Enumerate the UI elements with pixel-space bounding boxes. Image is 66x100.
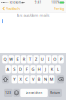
staticText: Postfach (6, 6, 20, 11)
staticText: W (9, 57, 13, 62)
staticText: O (53, 57, 56, 62)
staticText: D (19, 67, 22, 72)
button[interactable]: S (11, 65, 17, 73)
staticText: K (51, 67, 53, 72)
staticText: R (23, 57, 25, 62)
button[interactable]: Delete (57, 75, 64, 83)
button[interactable]: M (49, 75, 54, 83)
button[interactable]: H (36, 65, 42, 73)
staticText: Z (35, 57, 37, 62)
button[interactable]: X (18, 75, 23, 83)
staticText: G (31, 67, 34, 72)
staticText: Y (13, 77, 15, 82)
button[interactable]: A (5, 65, 11, 73)
staticText: M (50, 77, 54, 82)
button[interactable]: F (24, 65, 30, 73)
staticText: 9:41 (35, 1, 42, 4)
button[interactable]: C (24, 75, 30, 83)
staticText: U (41, 57, 44, 62)
staticText: Fertig (54, 6, 64, 11)
staticText: B (38, 77, 41, 82)
button[interactable]: 123 (4, 89, 13, 97)
button[interactable]: P (58, 55, 64, 63)
staticText: X (20, 77, 22, 82)
staticText: 100% (51, 1, 59, 4)
button[interactable]: Emoji (13, 89, 20, 97)
staticText: L (57, 67, 59, 72)
staticText: T (29, 57, 31, 62)
button[interactable]: N (43, 75, 48, 83)
staticText: S (13, 67, 15, 72)
staticText: N (44, 77, 47, 82)
button[interactable]: V (30, 75, 36, 83)
button[interactable]: U (39, 55, 45, 63)
button[interactable]: Z (33, 55, 39, 63)
staticText: C (25, 77, 28, 82)
staticText: I (48, 57, 49, 62)
staticText: Telekom (8, 1, 20, 4)
button[interactable]: K (49, 65, 54, 73)
staticText: J (45, 67, 46, 72)
button[interactable]: W (8, 55, 14, 63)
button[interactable]: J (43, 65, 48, 73)
button[interactable]: Fertig (54, 6, 64, 11)
staticText: P (60, 57, 62, 62)
staticText: V (32, 77, 34, 82)
staticText: F (26, 67, 28, 72)
button[interactable]: B (36, 75, 42, 83)
button[interactable]: L (55, 65, 61, 73)
button[interactable]: T (27, 55, 33, 63)
staticText: E (16, 57, 18, 62)
staticText: A (7, 67, 10, 72)
button[interactable]: Return (48, 89, 62, 97)
staticText: An: aus/dem mails (16, 13, 49, 18)
button[interactable]: Shift (2, 75, 9, 83)
button[interactable]: I (46, 55, 51, 63)
staticText: 123 (5, 91, 11, 95)
button[interactable]: E (15, 55, 20, 63)
staticText: H (38, 67, 41, 72)
staticText: Leerzeichen (25, 91, 42, 95)
button[interactable]: R (21, 55, 26, 63)
button[interactable]: Postfach (2, 6, 20, 11)
button[interactable]: Y (11, 75, 17, 83)
button[interactable]: G (30, 65, 36, 73)
staticText: Q (3, 57, 6, 62)
button[interactable]: Leerzeichen (20, 89, 48, 97)
button[interactable]: Q (2, 55, 8, 63)
button[interactable]: O (52, 55, 58, 63)
button[interactable]: D (18, 65, 23, 73)
staticText: Return (50, 91, 60, 95)
